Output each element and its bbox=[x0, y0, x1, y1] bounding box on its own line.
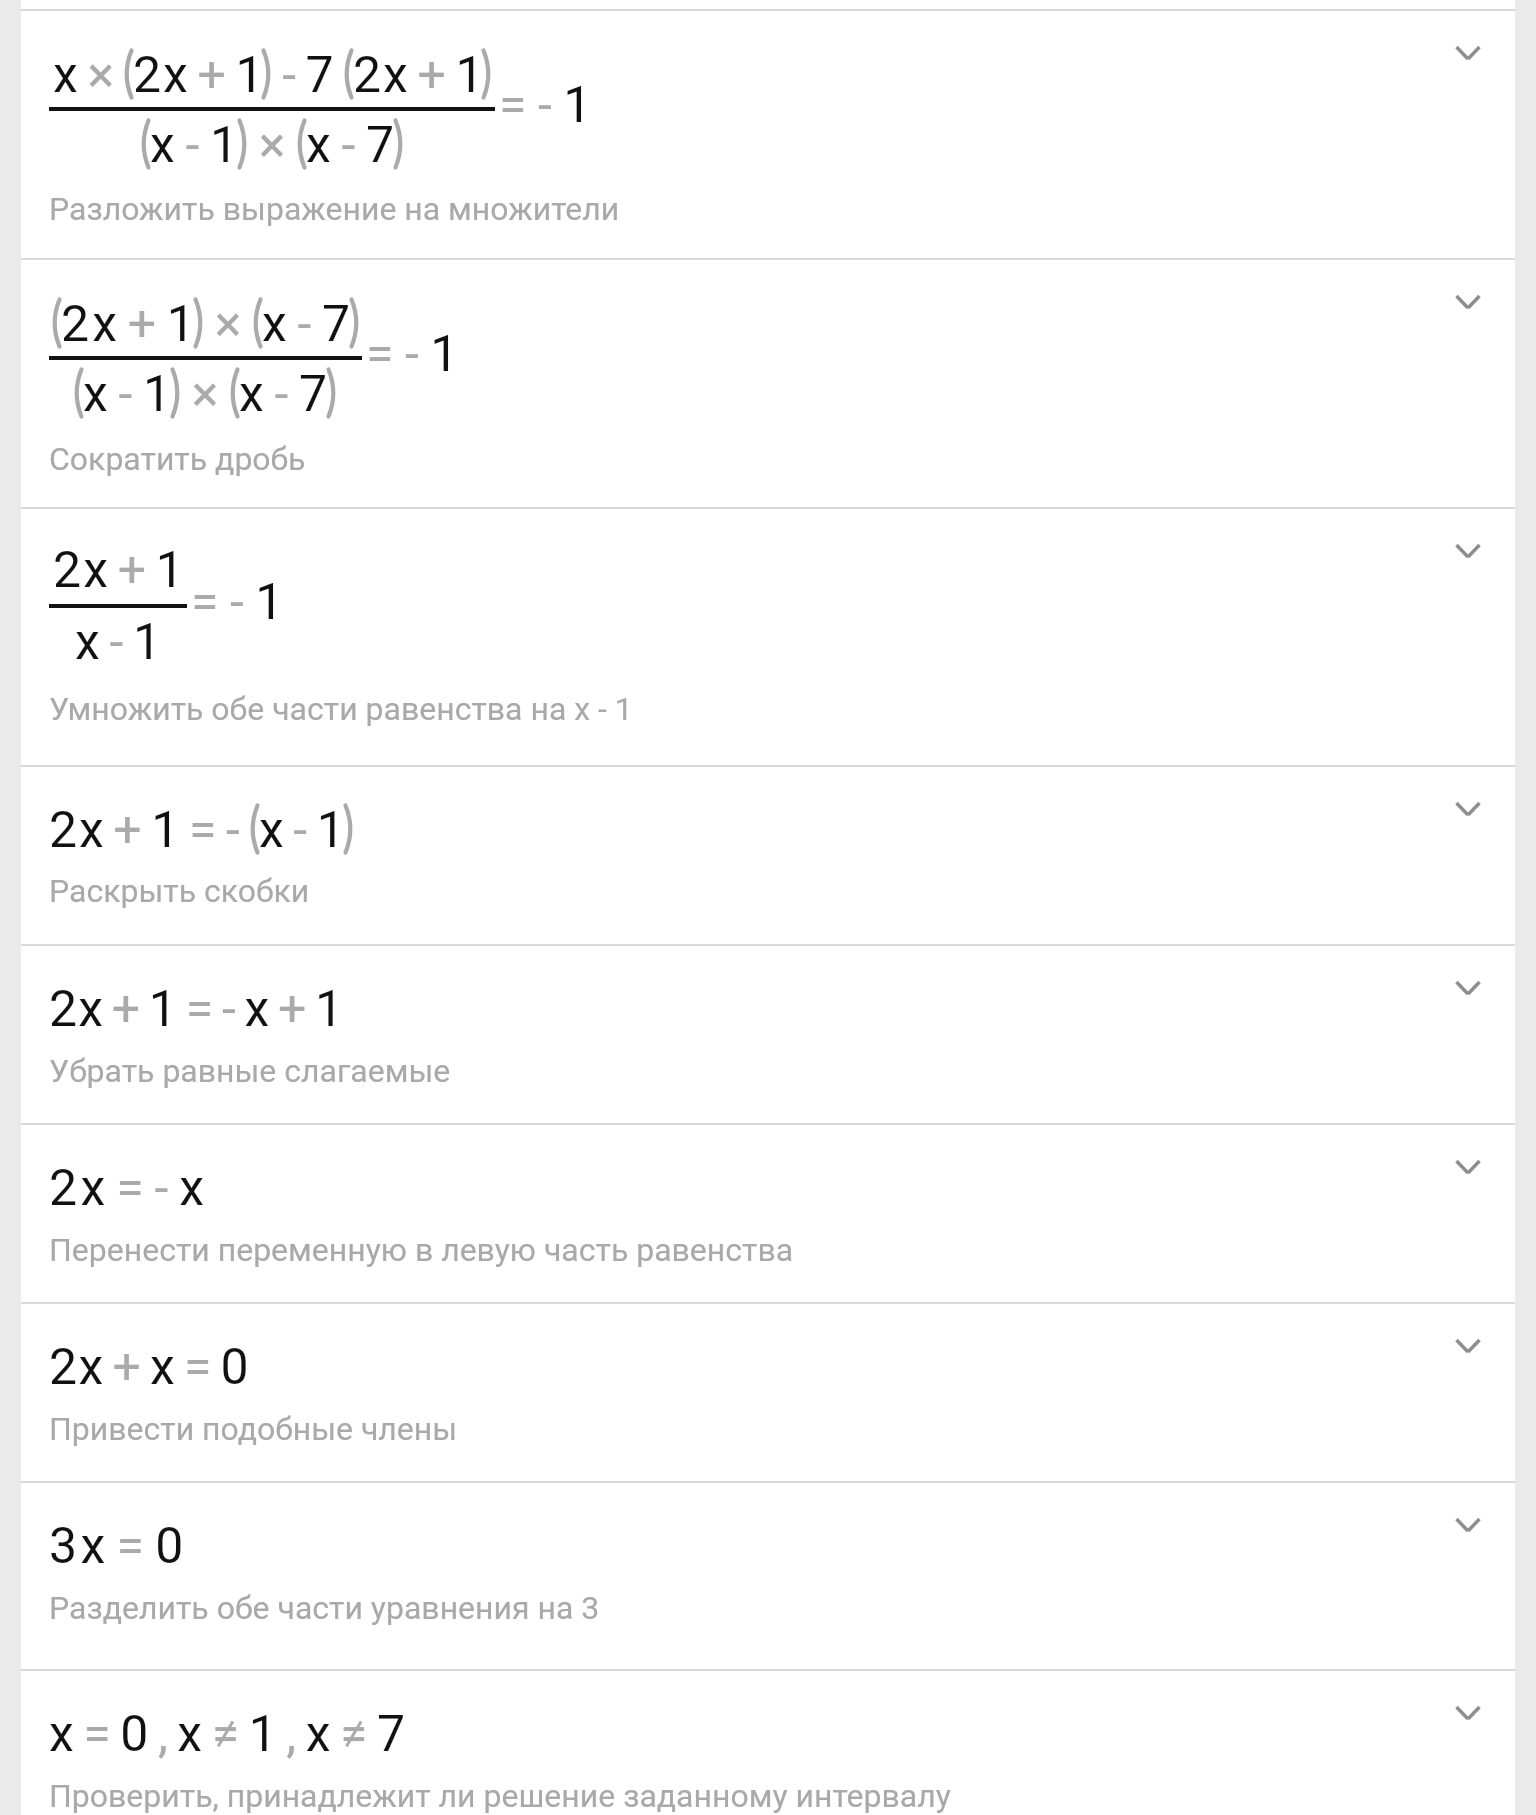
staticText: Проверить, принадлежит ли решение заданн… bbox=[49, 1777, 951, 1815]
button[interactable]: 2 x = - x bbox=[21, 1125, 1515, 1302]
button[interactable]: 2 x + 1 bbox=[21, 509, 1515, 765]
staticText: Разделить обе части уравнения на 3 bbox=[49, 1589, 600, 1627]
staticText: Разложить выражение на множители bbox=[49, 190, 620, 228]
staticText: = - 1 bbox=[499, 76, 591, 135]
button[interactable]: 2 x + 1 bbox=[21, 260, 1515, 507]
button[interactable]: x × bbox=[21, 11, 1515, 258]
staticText: 2 x = - x bbox=[49, 1159, 204, 1218]
button[interactable]: Expand step bbox=[1455, 801, 1481, 817]
button[interactable]: Expand step bbox=[1455, 1705, 1481, 1721]
staticText: × bbox=[180, 365, 230, 424]
button[interactable]: 2 x + 1 = - bbox=[21, 767, 1515, 944]
staticText: Привести подобные члены bbox=[49, 1410, 458, 1448]
staticText: 3 x = 0 bbox=[49, 1517, 183, 1576]
staticText: x - 7 bbox=[239, 365, 327, 424]
button[interactable]: x = 0 , x ≠ 1 , x ≠ 7 bbox=[21, 1671, 1515, 1815]
staticText: Умножить обе части равенства на x - 1 bbox=[49, 690, 633, 728]
button[interactable]: 3 x = 0 bbox=[21, 1483, 1515, 1669]
staticText: Сократить дробь bbox=[49, 440, 306, 478]
button[interactable]: Expand step bbox=[1455, 1338, 1481, 1354]
staticText: x - 1 bbox=[150, 116, 238, 175]
button[interactable]: 2 x + 1 = - x + 1 bbox=[21, 946, 1515, 1123]
staticText: Перенести переменную в левую часть равен… bbox=[49, 1231, 794, 1269]
staticText: 2 x + x = 0 bbox=[49, 1338, 247, 1397]
staticText: Раскрыть скобки bbox=[49, 872, 310, 910]
button[interactable]: Expand step bbox=[1455, 1159, 1481, 1175]
staticText: 2 x + 1 = - x + 1 bbox=[49, 980, 342, 1039]
staticText: x × bbox=[53, 46, 124, 105]
button[interactable]: Expand step bbox=[1455, 45, 1481, 61]
staticText: 2 x + 1 bbox=[133, 46, 262, 105]
staticText: x - 7 bbox=[262, 295, 350, 354]
staticText: x - 1 bbox=[259, 801, 344, 860]
button[interactable]: 2 x + x = 0 bbox=[21, 1304, 1515, 1481]
button[interactable]: Expand step bbox=[1455, 294, 1481, 310]
staticText: x = 0 , x ≠ 1 , x ≠ 7 bbox=[49, 1705, 404, 1764]
staticText: x - 1 bbox=[83, 365, 171, 424]
staticText: = - 1 bbox=[191, 573, 283, 632]
staticText: 2 x + 1 bbox=[61, 295, 194, 354]
staticText: × bbox=[247, 116, 297, 175]
button[interactable]: Expand step bbox=[1455, 1517, 1481, 1533]
staticText: Убрать равные слагаемые bbox=[49, 1052, 451, 1090]
button[interactable]: Expand step bbox=[1455, 980, 1481, 996]
staticText: × bbox=[203, 295, 253, 354]
staticText: 2 x + 1 bbox=[353, 46, 482, 105]
staticText: 2 x + 1 bbox=[53, 541, 183, 600]
staticText: - 7 bbox=[271, 46, 344, 105]
staticText: = - 1 bbox=[366, 325, 458, 384]
staticText: x - 1 bbox=[75, 613, 160, 672]
staticText: 2 x + 1 = - bbox=[49, 801, 250, 860]
button[interactable]: Expand step bbox=[1455, 543, 1481, 559]
staticText: x - 7 bbox=[306, 116, 394, 175]
